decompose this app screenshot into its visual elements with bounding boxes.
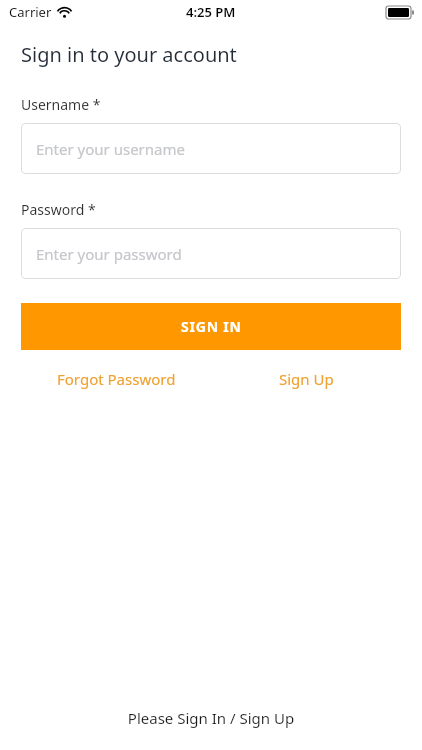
staticText: Username * <box>21 95 101 114</box>
button[interactable]: Enter your password <box>21 228 401 279</box>
staticText: Enter your password <box>36 244 182 264</box>
staticText: Forgot Password <box>57 369 176 389</box>
staticText: SIGN IN <box>181 317 242 336</box>
staticText: Password * <box>21 200 96 219</box>
staticText: Please Sign In / Sign Up <box>0 708 422 728</box>
staticText: Sign Up <box>279 369 334 389</box>
staticText: Enter your username <box>36 139 185 159</box>
button[interactable]: Enter your username <box>21 123 401 174</box>
button[interactable]: SIGN IN <box>21 303 401 350</box>
staticText: Sign in to your account <box>21 41 237 68</box>
staticText: Carrier <box>9 3 52 21</box>
button[interactable]: Forgot Password <box>21 369 211 389</box>
staticText: 4:25 PM <box>186 3 236 21</box>
button[interactable]: Sign Up <box>211 369 401 389</box>
